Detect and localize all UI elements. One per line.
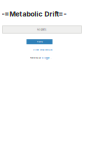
staticText: -=Metabolic Drift=- bbox=[1, 10, 66, 18]
staticText: Home bbox=[36, 40, 42, 43]
staticText: Blogger bbox=[42, 56, 50, 59]
button[interactable]: Home bbox=[26, 39, 52, 44]
button[interactable]: Blogger bbox=[42, 56, 50, 59]
button[interactable]: View web version bbox=[33, 48, 52, 51]
staticText: No posts. bbox=[37, 28, 47, 31]
staticText: Powered by bbox=[30, 56, 41, 59]
staticText: View web version bbox=[33, 48, 52, 51]
